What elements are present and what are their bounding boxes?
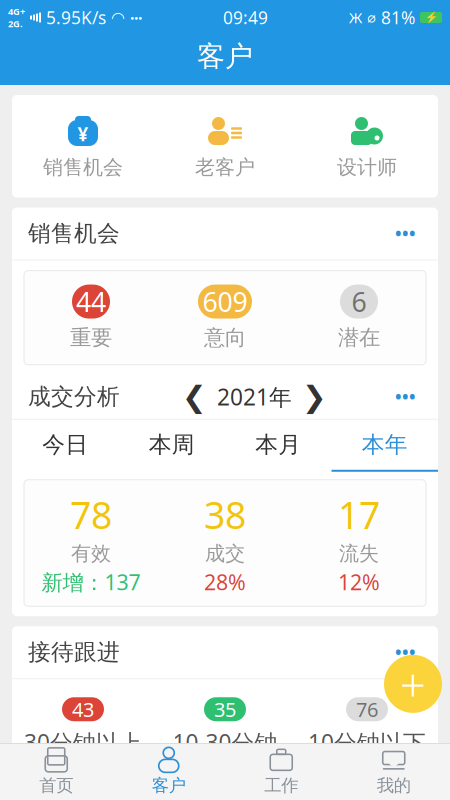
button[interactable]: Next year (292, 380, 337, 413)
button[interactable]: 609 (158, 285, 292, 351)
button[interactable]: 首页 (0, 744, 112, 800)
staticText: 本月 (255, 431, 301, 459)
button[interactable]: 17 (292, 490, 426, 596)
staticText: 销售机会 (28, 220, 120, 247)
staticText: 销售机会 (43, 155, 123, 180)
staticText: ¥ (77, 122, 88, 146)
staticText: + (400, 654, 426, 714)
button[interactable]: More (389, 214, 422, 253)
button[interactable]: 43 (12, 697, 154, 757)
button[interactable]: 老客户 (154, 109, 296, 184)
button[interactable]: 本月 (225, 420, 331, 472)
button[interactable]: 本周 (118, 420, 225, 472)
button[interactable]: More (389, 377, 422, 416)
staticText: 38 (204, 490, 246, 539)
button[interactable]: 76 (296, 697, 438, 757)
staticText: 流失 (339, 541, 379, 566)
staticText: ··· (130, 7, 142, 28)
staticText: 43 (72, 696, 94, 723)
staticText: 81% (381, 6, 415, 29)
staticText: 设计师 (337, 155, 397, 180)
staticText: 接待跟进 (28, 638, 120, 666)
staticText: ❮ (182, 380, 207, 413)
staticText: ❯ (302, 380, 327, 413)
staticText: 35 (214, 696, 236, 723)
staticText: ••• (395, 641, 416, 664)
button[interactable]: 6 (292, 285, 426, 351)
staticText: 重要 (70, 325, 112, 351)
staticText: ◠ (111, 8, 125, 27)
button[interactable]: 38 (158, 490, 292, 596)
staticText: 10-30分钟 (172, 727, 277, 757)
button[interactable]: ¥ (12, 109, 154, 184)
staticText: 609 (202, 284, 247, 319)
staticText: 5.95K/s (46, 6, 106, 29)
staticText: 新增：137 (41, 568, 140, 596)
staticText: 78 (70, 490, 112, 539)
staticText: 44 (76, 284, 106, 319)
button[interactable]: 设计师 (296, 109, 438, 184)
staticText: 2021年 (217, 382, 292, 412)
staticText: ••• (395, 385, 416, 408)
staticText: 我的 (377, 775, 411, 796)
button[interactable]: 客户 (112, 744, 225, 800)
staticText: 76 (356, 696, 378, 723)
staticText: 成交分析 (28, 383, 120, 411)
staticText: 10分钟以下 (308, 727, 426, 757)
button[interactable]: 35 (154, 697, 296, 757)
staticText: 30分钟以上 (24, 727, 142, 757)
staticText: ••• (395, 222, 416, 245)
button[interactable]: More (389, 633, 422, 672)
button[interactable]: 78 (24, 490, 158, 596)
button[interactable]: 44 (24, 285, 158, 351)
staticText: 老客户 (195, 155, 255, 180)
staticText: 17 (338, 490, 380, 539)
staticText: 有效 (71, 541, 111, 566)
button[interactable]: 今日 (12, 420, 118, 472)
staticText: 潜在 (338, 325, 380, 351)
staticText: 本周 (149, 431, 195, 459)
staticText: 工作 (264, 775, 298, 796)
staticText: Ж (349, 8, 362, 27)
staticText: ⚡ (424, 11, 437, 24)
staticText: 意向 (204, 325, 246, 351)
staticText: 客户 (197, 39, 253, 74)
button[interactable]: 我的 (337, 744, 450, 800)
staticText: ⌀ (367, 9, 376, 26)
staticText: 首页 (39, 775, 73, 796)
staticText: 28% (204, 568, 246, 596)
button[interactable]: 工作 (225, 744, 337, 800)
staticText: 09:49 (223, 6, 268, 29)
staticText: 6 (351, 284, 366, 319)
staticText: 成交 (205, 541, 245, 566)
staticText: 客户 (152, 775, 186, 796)
staticText: 4G+ 2G. (8, 5, 25, 30)
staticText: 今日 (42, 431, 88, 459)
button[interactable]: Previous year (172, 380, 217, 413)
button[interactable]: Add (384, 654, 442, 714)
staticText: 12% (338, 568, 380, 596)
button[interactable]: 本年 (331, 420, 438, 472)
staticText: 本年 (362, 431, 408, 459)
